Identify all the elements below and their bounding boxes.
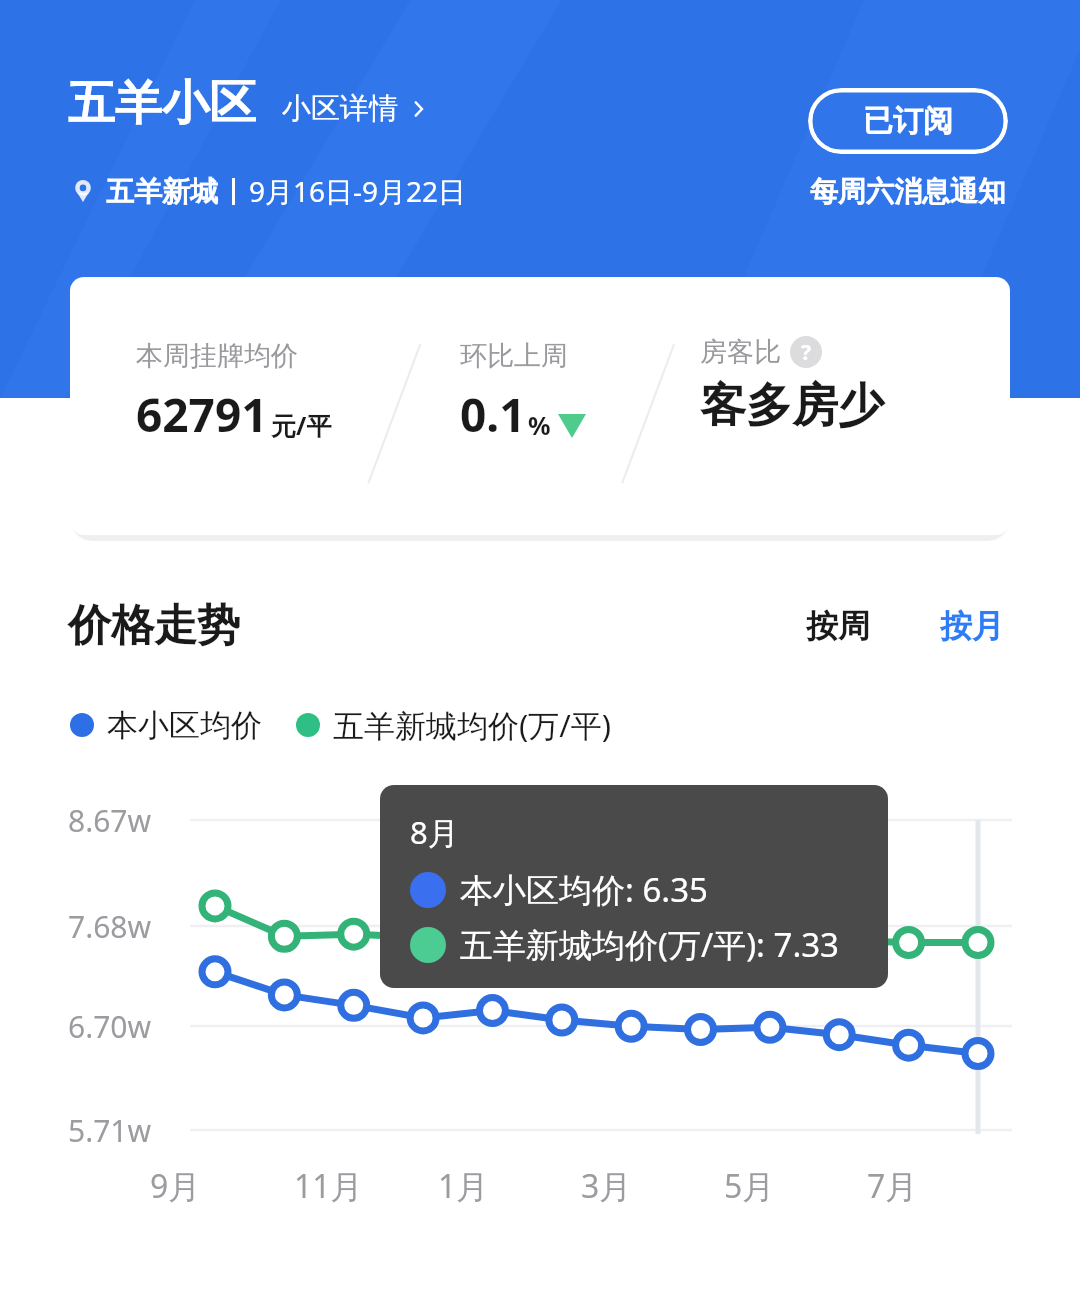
staticText: 8.67w xyxy=(68,800,152,841)
button[interactable]: 帮助 xyxy=(790,336,822,368)
staticText: 五羊新城均价(万/平) xyxy=(333,704,612,746)
button[interactable]: 小区详情 xyxy=(282,90,430,127)
staticText: 9月 xyxy=(150,1164,201,1208)
staticText: 五羊新城 xyxy=(106,174,218,209)
staticText: 6.70w xyxy=(68,1006,152,1047)
button[interactable]: 按周 xyxy=(800,598,876,654)
staticText: 按月 xyxy=(940,606,1004,646)
staticText: 五羊小区 xyxy=(68,74,256,133)
staticText: 5月 xyxy=(724,1164,775,1208)
staticText: 房客比 xyxy=(700,335,781,369)
staticText: ? xyxy=(801,338,812,367)
staticText: 小区详情 xyxy=(282,90,398,127)
staticText: 8月 xyxy=(410,811,459,853)
staticText: 每周六消息通知 xyxy=(810,174,1006,209)
staticText: 本小区均价: 6.35 xyxy=(460,867,708,912)
staticText: 3月 xyxy=(581,1164,632,1208)
staticText: 1月 xyxy=(438,1164,489,1208)
staticText: 元/平 xyxy=(271,408,332,442)
staticText: 按周 xyxy=(806,606,870,646)
staticText: 5.71w xyxy=(68,1110,152,1151)
staticText: 9月16日-9月22日 xyxy=(249,172,467,210)
staticText: 62791 xyxy=(136,383,268,446)
staticText: 已订阅 xyxy=(863,102,953,140)
staticText: % xyxy=(528,408,551,442)
staticText: 本周挂牌均价 xyxy=(136,339,298,373)
staticText: 7月 xyxy=(867,1164,918,1208)
staticText: 7.68w xyxy=(68,906,152,947)
staticText: 客多房少 xyxy=(700,377,884,435)
button[interactable]: 按月 xyxy=(934,598,1010,654)
staticText: 11月 xyxy=(294,1164,363,1208)
button[interactable]: 已订阅 xyxy=(808,88,1008,154)
staticText: 环比上周 xyxy=(460,339,568,373)
staticText: 本小区均价 xyxy=(107,706,262,745)
staticText: 五羊新城均价(万/平): 7.33 xyxy=(460,922,839,967)
staticText: 0.1 xyxy=(460,383,526,446)
staticText: 价格走势 xyxy=(68,599,240,653)
